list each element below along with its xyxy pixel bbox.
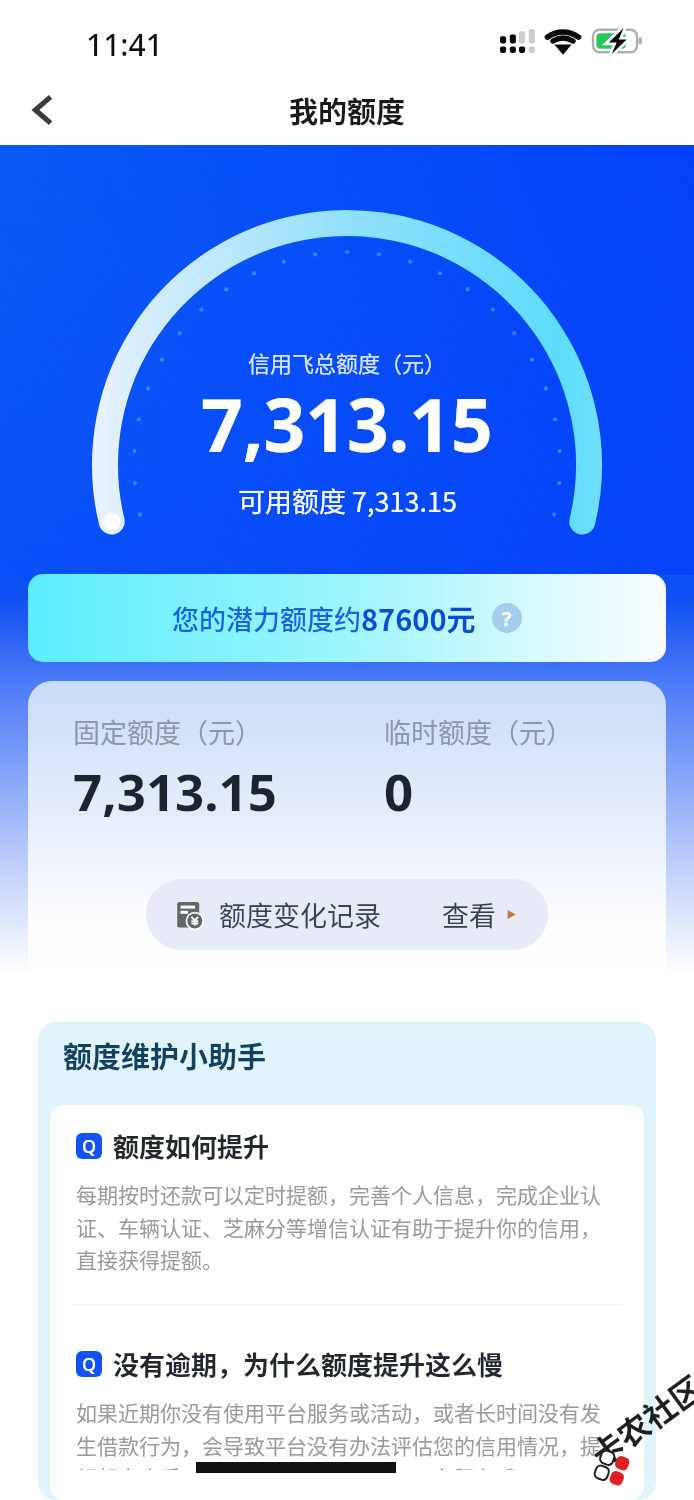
staticText: 7,313.15 [201, 374, 493, 473]
staticText: 额度维护小助手 [63, 1034, 267, 1076]
staticText: 信用飞总额度（元） [248, 346, 447, 378]
button[interactable]: Q [50, 1105, 644, 1304]
staticText: Q [82, 1134, 97, 1159]
button[interactable]: 额度变化记录 [146, 879, 548, 950]
staticText: 没有逾期，为什么额度提升这么慢 [113, 1345, 504, 1383]
button[interactable]: Q [50, 1305, 644, 1500]
staticText: 0 [384, 756, 414, 825]
staticText: 11:41 [86, 24, 163, 65]
staticText: 卡农社区 [580, 1363, 694, 1476]
staticText: ? [502, 605, 512, 632]
staticText: Q [82, 1352, 97, 1377]
staticText: 我的额度 [289, 89, 406, 131]
staticText: 临时额度（元） [384, 712, 573, 751]
staticText: 可用额度 7,313.15 [238, 481, 457, 520]
staticText: 7,313.15 [73, 756, 277, 825]
staticText: 固定额度（元） [73, 712, 262, 751]
staticText: 额度变化记录 [219, 895, 381, 934]
staticText: 您的潜力额度约 [172, 599, 361, 638]
staticText: 查看 [442, 895, 496, 934]
staticText: 每期按时还款可以定时提额，完善个人信息，完成企业认证、车辆认证、芝麻分等增信认证… [76, 1179, 606, 1274]
staticText: 额度如何提升 [113, 1127, 270, 1165]
button[interactable]: 您的潜力额度约 [28, 574, 666, 662]
button[interactable]: Back [14, 82, 70, 138]
staticText: 如果近期你没有使用平台服务或活动，或者长时间没有发生借款行为，会导致平台没有办法… [76, 1397, 606, 1470]
staticText: 87600元 [361, 597, 476, 639]
